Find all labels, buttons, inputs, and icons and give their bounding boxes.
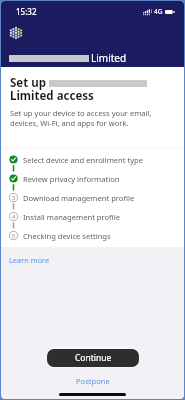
- other: Signal strength: [143, 6, 152, 16]
- staticText: Set up your device to access your email,…: [10, 108, 152, 128]
- staticText: Select device and enrollment type: [23, 155, 144, 165]
- staticText: Review privacy information: [23, 174, 120, 184]
- staticText: Limited: [91, 51, 127, 65]
- other: Battery: [165, 10, 176, 14]
- button[interactable]: 5: [1, 226, 184, 245]
- staticText: 5: [12, 232, 16, 239]
- staticText: Limited access: [10, 88, 94, 104]
- staticText: Postpone: [76, 376, 110, 386]
- button[interactable]: 4: [1, 207, 184, 226]
- staticText: Set up: [10, 75, 49, 91]
- staticText: Learn more: [9, 255, 50, 265]
- staticText: 4G: [154, 7, 163, 16]
- button[interactable]: Learn more: [9, 255, 50, 265]
- button[interactable]: Review privacy information: [1, 169, 184, 188]
- staticText: Install management profile: [23, 212, 120, 222]
- staticText: Continue: [75, 352, 112, 364]
- button[interactable]: Select device and enrollment type: [1, 150, 184, 169]
- button[interactable]: 3: [1, 188, 184, 207]
- button[interactable]: Postpone: [76, 376, 110, 386]
- other: Company logo: [9, 26, 23, 40]
- button[interactable]: Continue: [47, 349, 139, 367]
- staticText: Checking device settings: [23, 231, 111, 241]
- staticText: 15:32: [16, 6, 37, 17]
- staticText: 4: [12, 213, 16, 220]
- staticText: 3: [12, 194, 16, 201]
- staticText: Download management profile: [23, 193, 135, 203]
